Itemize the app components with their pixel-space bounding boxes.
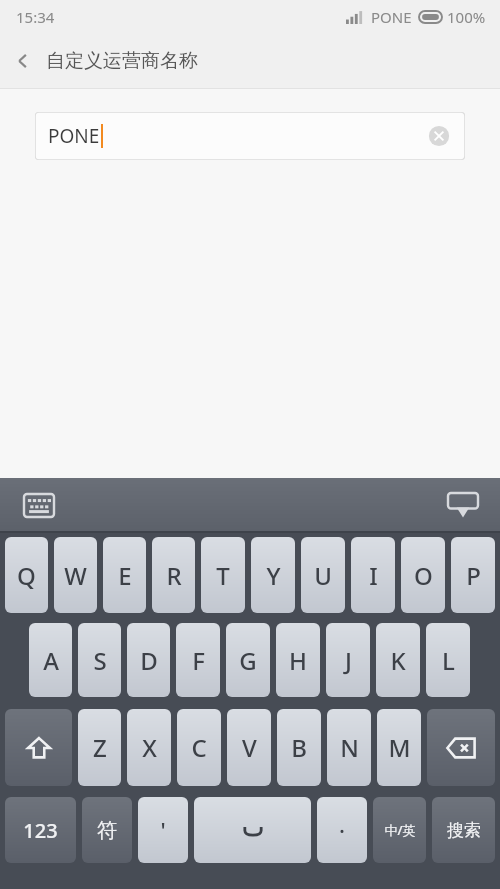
staticText: F bbox=[192, 644, 205, 677]
staticText: E bbox=[118, 559, 132, 592]
staticText: H bbox=[289, 644, 307, 677]
staticText: X bbox=[142, 731, 157, 764]
button[interactable]: W bbox=[54, 537, 97, 613]
staticText: V bbox=[242, 731, 257, 764]
button[interactable]: C bbox=[177, 709, 221, 786]
button[interactable]: · bbox=[317, 797, 367, 863]
button[interactable]: R bbox=[152, 537, 195, 613]
staticText: O bbox=[414, 559, 433, 592]
button[interactable]: Space bbox=[194, 797, 311, 863]
button[interactable]: 中/英 bbox=[373, 797, 426, 863]
staticText: Z bbox=[93, 731, 107, 764]
button[interactable]: B bbox=[277, 709, 321, 786]
staticText: 100% bbox=[447, 7, 486, 27]
staticText: 符 bbox=[97, 818, 117, 843]
button[interactable]: T bbox=[201, 537, 245, 613]
staticText: · bbox=[339, 815, 345, 845]
staticText: N bbox=[340, 731, 359, 764]
button[interactable]: 符 bbox=[82, 797, 132, 863]
staticText: W bbox=[64, 559, 87, 592]
button[interactable]: O bbox=[401, 537, 445, 613]
button[interactable]: 123 bbox=[5, 797, 76, 863]
button[interactable]: V bbox=[227, 709, 271, 786]
button[interactable]: E bbox=[103, 537, 146, 613]
button[interactable]: D bbox=[127, 623, 170, 697]
button[interactable]: L bbox=[426, 623, 470, 697]
staticText: 123 bbox=[23, 817, 58, 844]
button[interactable]: G bbox=[226, 623, 270, 697]
button[interactable]: ' bbox=[138, 797, 188, 863]
button[interactable]: Hide keyboard bbox=[444, 486, 482, 524]
staticText: R bbox=[166, 559, 182, 592]
staticText: Q bbox=[17, 559, 36, 592]
staticText: U bbox=[314, 559, 332, 592]
button[interactable]: S bbox=[78, 623, 121, 697]
staticText: PONE bbox=[371, 7, 412, 27]
button[interactable]: P bbox=[451, 537, 495, 613]
staticText: D bbox=[140, 644, 158, 677]
button[interactable]: Back bbox=[0, 34, 46, 88]
button[interactable]: Z bbox=[78, 709, 121, 786]
staticText: K bbox=[390, 644, 406, 677]
button[interactable]: X bbox=[127, 709, 171, 786]
button[interactable]: N bbox=[327, 709, 371, 786]
staticText: 中/英 bbox=[384, 821, 416, 839]
staticText: J bbox=[345, 644, 352, 677]
staticText: Y bbox=[266, 559, 281, 592]
staticText: L bbox=[442, 644, 455, 677]
staticText: M bbox=[388, 731, 411, 764]
button[interactable]: M bbox=[377, 709, 421, 786]
button[interactable]: Q bbox=[5, 537, 48, 613]
button[interactable]: U bbox=[301, 537, 345, 613]
button[interactable]: Keyboard settings bbox=[20, 486, 58, 524]
staticText: S bbox=[93, 644, 107, 677]
button[interactable]: A bbox=[29, 623, 72, 697]
button[interactable]: K bbox=[376, 623, 420, 697]
button[interactable]: Shift bbox=[5, 709, 72, 786]
button[interactable]: 搜索 bbox=[432, 797, 495, 863]
button[interactable]: Backspace bbox=[427, 709, 495, 786]
staticText: I bbox=[369, 559, 378, 592]
staticText: PONE bbox=[48, 123, 100, 149]
button[interactable]: Clear text bbox=[427, 124, 451, 148]
staticText: C bbox=[191, 731, 207, 764]
staticText: P bbox=[466, 559, 481, 592]
button[interactable]: F bbox=[176, 623, 220, 697]
button[interactable]: I bbox=[351, 537, 395, 613]
staticText: 搜索 bbox=[447, 820, 481, 841]
staticText: 15:34 bbox=[16, 7, 55, 27]
staticText: B bbox=[291, 731, 307, 764]
button[interactable]: Y bbox=[251, 537, 295, 613]
button[interactable]: J bbox=[326, 623, 370, 697]
staticText: ' bbox=[160, 815, 166, 845]
button[interactable]: H bbox=[276, 623, 320, 697]
staticText: T bbox=[216, 559, 230, 592]
staticText: G bbox=[239, 644, 257, 677]
button[interactable]: PONE bbox=[35, 112, 465, 160]
staticText: 自定义运营商名称 bbox=[46, 49, 198, 73]
staticText: A bbox=[43, 644, 59, 677]
